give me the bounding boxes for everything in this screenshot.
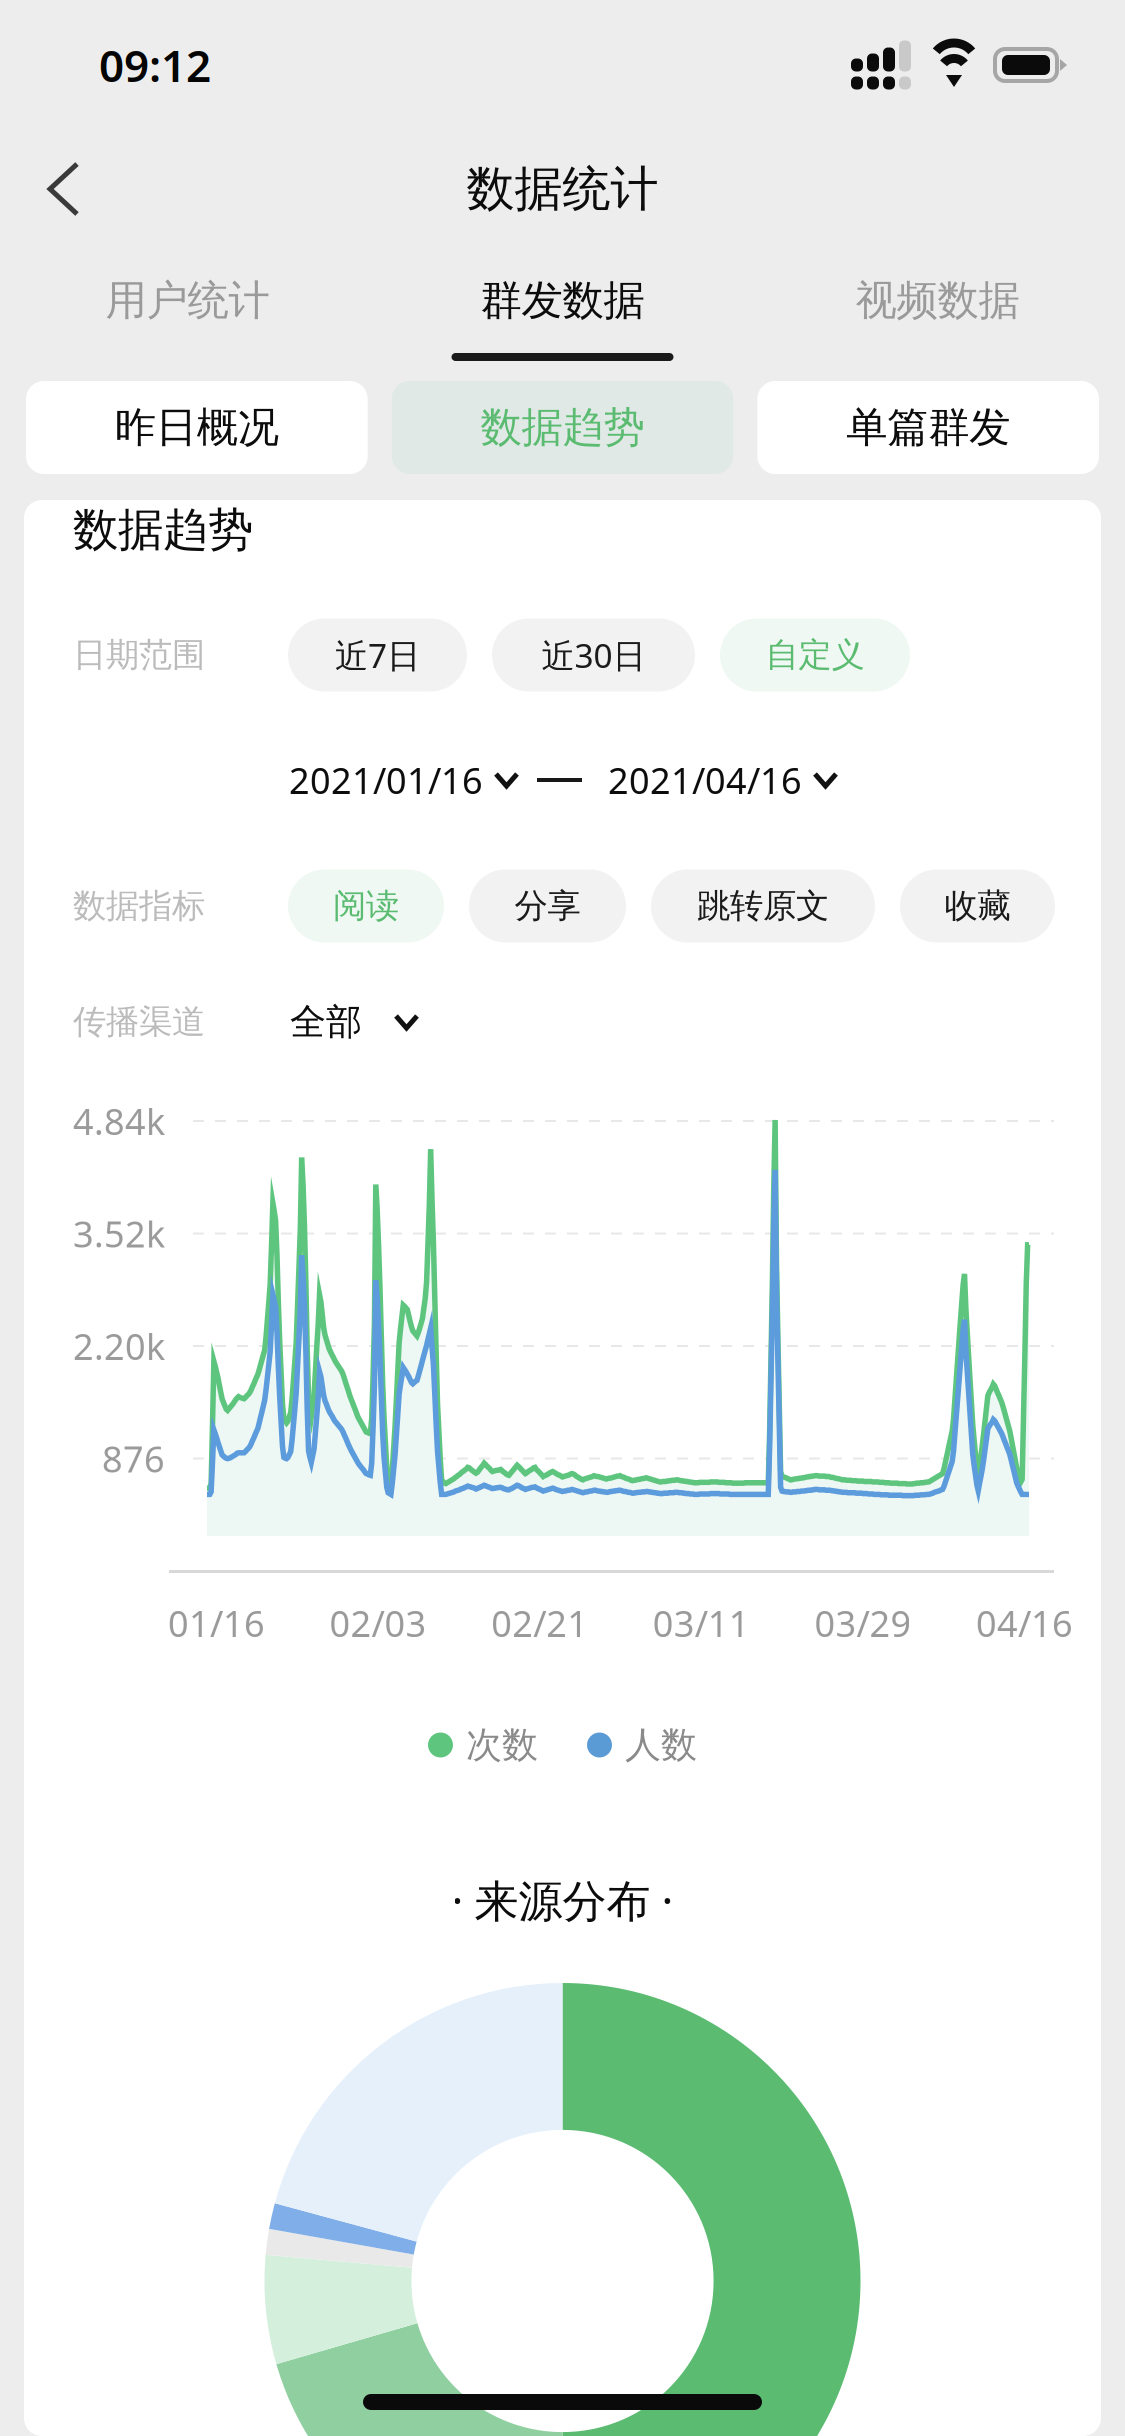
staticText: 人数	[625, 1723, 697, 1767]
button[interactable]: 数据趋势	[392, 381, 733, 474]
staticText: 跳转原文	[697, 885, 829, 926]
button[interactable]: 收藏	[900, 869, 1055, 942]
staticText: 03/11	[653, 1599, 750, 1647]
button[interactable]: 用户统计	[0, 248, 375, 381]
staticText: 日期范围	[73, 634, 205, 675]
staticText: 近7日	[335, 633, 420, 677]
staticText: 自定义	[765, 634, 864, 675]
button[interactable]: 群发数据	[375, 248, 750, 381]
staticText: 视频数据	[855, 275, 1019, 326]
button[interactable]: 全部	[263, 1000, 417, 1044]
staticText: 收藏	[944, 885, 1010, 926]
staticText: 数据统计	[466, 159, 658, 218]
staticText: 全部	[290, 1000, 362, 1044]
staticText: 群发数据	[480, 275, 644, 326]
staticText: 阅读	[333, 885, 399, 926]
button[interactable]: 近7日	[288, 618, 467, 691]
staticText: 昨日概况	[115, 402, 279, 453]
staticText: 09:12	[99, 36, 211, 94]
staticText: 次数	[466, 1723, 538, 1767]
staticText: 3.52k	[73, 1210, 165, 1257]
staticText: 2.20k	[73, 1322, 165, 1370]
staticText: 数据趋势	[480, 402, 644, 453]
staticText: 02/03	[330, 1599, 427, 1647]
button[interactable]: 单篇群发	[757, 381, 1099, 474]
button[interactable]: 分享	[469, 869, 626, 942]
staticText: 4.84k	[73, 1097, 165, 1145]
staticText: · 来源分布 ·	[451, 1871, 673, 1929]
button[interactable]: 跳转原文	[651, 869, 875, 942]
staticText: 876	[102, 1435, 165, 1482]
button[interactable]: 阅读	[288, 869, 444, 942]
staticText: 2021/01/16	[289, 756, 483, 804]
staticText: 02/21	[491, 1599, 588, 1647]
button[interactable]: 视频数据	[750, 248, 1125, 381]
button[interactable]: 近30日	[492, 618, 695, 691]
staticText: 近30日	[541, 633, 645, 677]
staticText: 传播渠道	[73, 1001, 205, 1042]
staticText: 分享	[514, 885, 580, 926]
button[interactable]: Back	[14, 128, 113, 250]
staticText: 数据指标	[73, 885, 205, 926]
staticText: 用户统计	[105, 275, 269, 326]
staticText: 2021/04/16	[608, 756, 802, 804]
staticText: 03/29	[814, 1599, 911, 1647]
staticText: 数据趋势	[73, 502, 253, 558]
staticText: 01/16	[168, 1599, 265, 1647]
button[interactable]: 昨日概况	[26, 381, 368, 474]
staticText: 单篇群发	[846, 402, 1010, 453]
button[interactable]: 自定义	[720, 618, 910, 691]
staticText: 04/16	[976, 1599, 1073, 1647]
